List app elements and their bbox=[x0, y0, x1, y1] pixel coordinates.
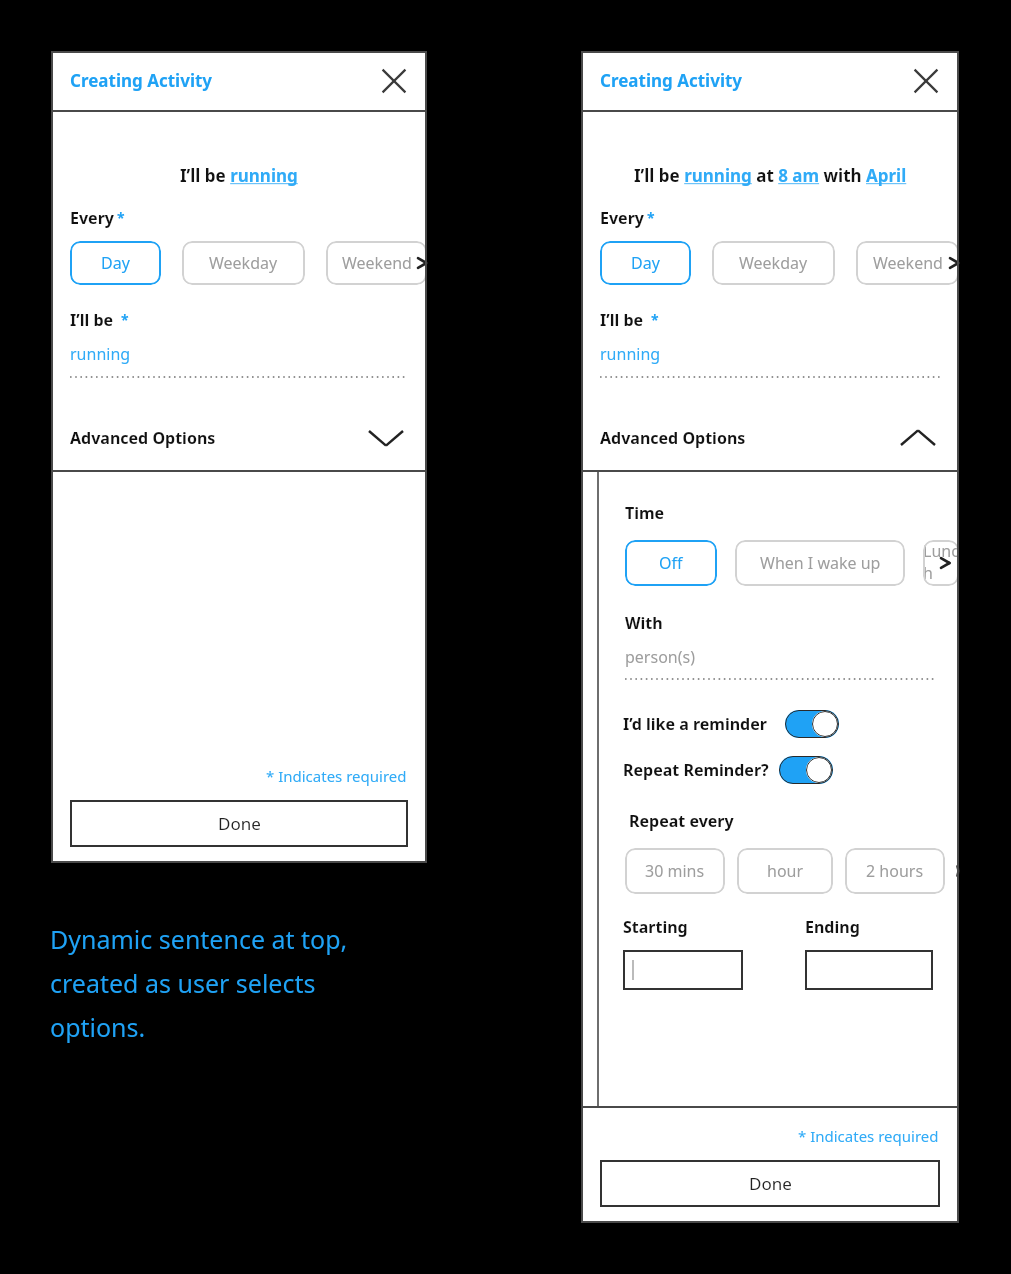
staticText: I’ll be running bbox=[180, 164, 298, 187]
button[interactable]: Day bbox=[600, 241, 691, 285]
button[interactable]: Advanced Options bbox=[581, 406, 959, 470]
button[interactable]: Weekend bbox=[326, 241, 427, 285]
staticText: Every bbox=[70, 207, 114, 229]
staticText: * bbox=[117, 208, 125, 227]
staticText: When I wake up bbox=[760, 552, 881, 574]
staticText: Done bbox=[218, 812, 261, 835]
staticText: Every bbox=[600, 207, 644, 229]
button[interactable]: Creating Activity bbox=[600, 69, 743, 92]
staticText: Weekday bbox=[739, 252, 808, 274]
staticText: I’ll be running at 8 am with April bbox=[634, 164, 907, 187]
button[interactable]: Done bbox=[600, 1160, 940, 1207]
button[interactable]: hour bbox=[737, 848, 833, 894]
staticText: 2 hours bbox=[866, 860, 924, 882]
staticText: Time bbox=[625, 502, 665, 524]
staticText: I’d like a reminder bbox=[623, 713, 767, 735]
button[interactable]: Day bbox=[70, 241, 161, 285]
staticText: I’ll be bbox=[600, 309, 648, 331]
staticText: Ending bbox=[805, 916, 860, 938]
button[interactable]: 2 hours bbox=[845, 848, 945, 894]
staticText: I’ll be bbox=[70, 309, 118, 331]
button[interactable]: Weekend bbox=[856, 241, 959, 285]
staticText: Advanced Options bbox=[600, 427, 746, 449]
staticText: created as user selects bbox=[50, 966, 316, 1000]
staticText: Lunch time bbox=[923, 540, 959, 586]
staticText: Off bbox=[659, 552, 683, 574]
staticText: 30 mins bbox=[645, 860, 705, 882]
staticText: * Indicates required bbox=[266, 766, 407, 786]
staticText: hour bbox=[767, 860, 804, 882]
staticText: Weekday bbox=[209, 252, 278, 274]
staticText: Weekend bbox=[342, 252, 412, 274]
button[interactable]: Weekday bbox=[182, 241, 305, 285]
staticText: With bbox=[625, 612, 663, 634]
staticText: Starting bbox=[623, 916, 688, 938]
staticText: options. bbox=[50, 1010, 146, 1044]
button[interactable]: Lunch time bbox=[923, 540, 959, 586]
staticText: * bbox=[651, 310, 659, 329]
staticText: Dynamic sentence at top, bbox=[50, 922, 348, 956]
staticText: Repeat every bbox=[629, 810, 734, 832]
staticText: running bbox=[600, 343, 661, 365]
staticText: * bbox=[647, 208, 655, 227]
staticText: running bbox=[70, 343, 131, 365]
button[interactable]: Creating Activity bbox=[70, 69, 213, 92]
button[interactable]: Toggle bbox=[785, 710, 839, 738]
button[interactable]: 30 mins bbox=[625, 848, 725, 894]
button[interactable]: Toggle bbox=[779, 756, 833, 784]
staticText: Advanced Options bbox=[70, 427, 216, 449]
button[interactable]: Advanced Options bbox=[51, 406, 427, 470]
button[interactable]: Close bbox=[909, 64, 943, 98]
staticText: Day bbox=[631, 252, 660, 274]
button[interactable]: Done bbox=[70, 800, 408, 847]
button[interactable]: When I wake up bbox=[735, 540, 905, 586]
button[interactable]: Close bbox=[377, 64, 411, 98]
staticText: Repeat Reminder? bbox=[623, 759, 769, 781]
button[interactable]: I’d like a reminder bbox=[623, 710, 839, 738]
staticText: Day bbox=[101, 252, 130, 274]
staticText: * Indicates required bbox=[798, 1126, 939, 1146]
button[interactable] bbox=[623, 950, 743, 990]
staticText: Weekend bbox=[873, 252, 943, 274]
staticText: * bbox=[121, 310, 129, 329]
button[interactable]: Repeat Reminder? bbox=[623, 756, 833, 784]
button[interactable]: Off bbox=[625, 540, 717, 586]
button[interactable]: Weekday bbox=[712, 241, 835, 285]
staticText: person(s) bbox=[625, 646, 695, 668]
staticText: Done bbox=[749, 1172, 792, 1195]
button[interactable] bbox=[805, 950, 933, 990]
